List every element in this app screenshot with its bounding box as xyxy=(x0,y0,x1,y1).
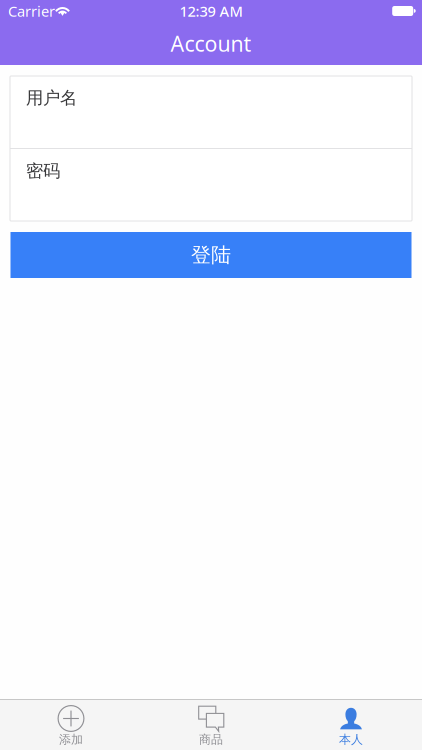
staticText: 密码 xyxy=(26,160,60,182)
staticText: 添加 xyxy=(59,732,83,747)
button[interactable]: 登陆 xyxy=(10,232,411,278)
staticText: 登陆 xyxy=(191,243,231,267)
staticText: Account xyxy=(170,29,251,58)
staticText: 用户名 xyxy=(26,87,77,109)
button[interactable]: 本人 xyxy=(281,700,421,750)
button[interactable]: 商品 xyxy=(141,700,281,750)
staticText: 商品 xyxy=(199,732,223,747)
staticText: Carrier xyxy=(8,1,55,21)
button[interactable]: 添加 xyxy=(1,700,141,750)
staticText: 12:39 AM xyxy=(179,1,242,21)
staticText: 本人 xyxy=(339,732,363,747)
